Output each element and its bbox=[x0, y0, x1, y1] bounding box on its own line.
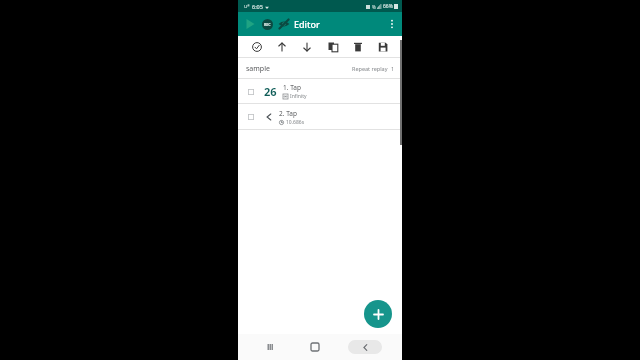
button[interactable]: Recents bbox=[259, 335, 283, 359]
button[interactable]: Save bbox=[374, 38, 392, 56]
button[interactable]: Select item bbox=[238, 79, 402, 104]
button[interactable]: Record bbox=[259, 16, 275, 32]
button[interactable]: Select item bbox=[238, 104, 402, 130]
staticText: 26 bbox=[264, 84, 277, 99]
staticText: 2. Tap bbox=[279, 109, 297, 118]
button[interactable]: Hide overlay bbox=[276, 16, 292, 32]
button[interactable]: Select item bbox=[245, 111, 257, 123]
button[interactable]: Delete bbox=[349, 38, 367, 56]
button[interactable]: Move up bbox=[273, 38, 291, 56]
button[interactable]: sample bbox=[238, 58, 402, 79]
staticText: Editor bbox=[294, 18, 320, 30]
button[interactable]: Add action bbox=[364, 300, 392, 328]
button[interactable]: More options bbox=[382, 14, 402, 34]
button[interactable]: Select item bbox=[245, 86, 257, 98]
staticText: 6:05 bbox=[252, 3, 263, 10]
button[interactable]: Select all bbox=[248, 38, 266, 56]
staticText: REC bbox=[264, 22, 271, 27]
button[interactable]: Copy bbox=[324, 38, 342, 56]
button[interactable]: Play bbox=[242, 16, 258, 32]
staticText: 1. Tap bbox=[283, 83, 301, 92]
staticText: 10.686s bbox=[286, 119, 305, 126]
staticText: u* bbox=[244, 3, 250, 10]
staticText: sample bbox=[246, 64, 270, 74]
button[interactable]: Home bbox=[303, 335, 327, 359]
staticText: Repeat replay bbox=[352, 65, 388, 72]
staticText: % bbox=[372, 4, 376, 10]
staticText: 1 bbox=[391, 65, 395, 72]
staticText: 66% bbox=[383, 3, 393, 10]
button[interactable]: Move down bbox=[298, 38, 316, 56]
button[interactable]: Back bbox=[348, 340, 382, 354]
staticText: Infinity bbox=[290, 93, 307, 100]
